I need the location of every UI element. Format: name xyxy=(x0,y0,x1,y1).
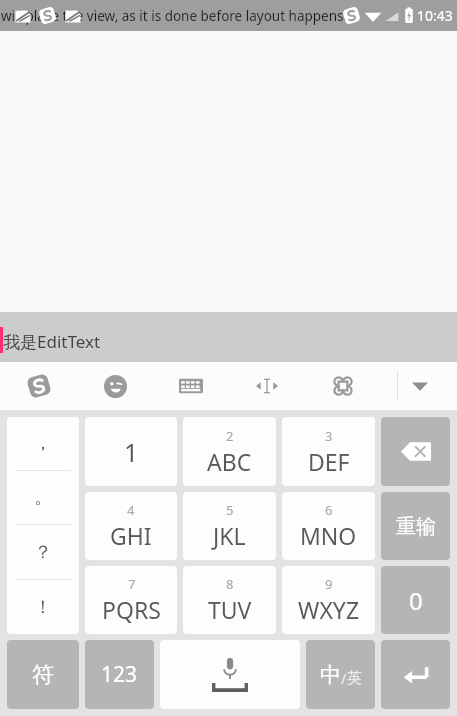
button[interactable]: 1 xyxy=(85,417,177,486)
staticText: WXYZ xyxy=(298,594,360,625)
staticText: 5 xyxy=(226,501,234,519)
staticText: 10:43 xyxy=(417,6,453,25)
button[interactable]: 重输 xyxy=(381,492,450,560)
button[interactable]: 8 xyxy=(183,566,276,634)
staticText: JKL xyxy=(213,520,246,551)
staticText: 0 xyxy=(409,584,423,617)
button[interactable]: 123 xyxy=(85,640,154,709)
staticText: 1 xyxy=(124,435,139,469)
button[interactable]: 中 xyxy=(306,640,375,709)
staticText: ？ xyxy=(34,541,52,564)
button[interactable]: 9 xyxy=(282,566,375,634)
button[interactable]: Hide keyboard xyxy=(398,362,442,410)
button[interactable]: 3 xyxy=(282,417,375,486)
staticText: GHI xyxy=(110,520,152,551)
staticText: 7 xyxy=(128,575,136,593)
staticText: ！ xyxy=(34,596,52,619)
staticText: 3 xyxy=(325,427,333,445)
staticText: 重输 xyxy=(396,514,436,539)
staticText: 英 xyxy=(347,669,362,688)
staticText: 中 xyxy=(320,662,341,688)
staticText: / xyxy=(341,669,347,688)
staticText: 4 xyxy=(127,501,135,519)
button[interactable]: 2 xyxy=(183,417,276,486)
staticText: 6 xyxy=(325,501,333,519)
button[interactable]: 5 xyxy=(183,492,276,560)
button[interactable]: 6 xyxy=(282,492,375,560)
staticText: 123 xyxy=(101,660,138,689)
staticText: 8 xyxy=(226,575,234,593)
staticText: 符 xyxy=(32,661,54,689)
staticText: will place the view, as it is done befor… xyxy=(1,7,352,25)
button[interactable]: More functions xyxy=(305,362,381,410)
staticText: 我是EditText xyxy=(3,330,101,353)
button[interactable]: Sogou input method xyxy=(0,362,77,410)
button[interactable]: ， xyxy=(7,417,79,634)
staticText: TUV xyxy=(208,594,252,625)
button[interactable]: Enter xyxy=(381,640,450,709)
staticText: ABC xyxy=(207,446,252,477)
button[interactable]: Emoji xyxy=(77,362,153,410)
button[interactable]: Space, voice input xyxy=(160,640,300,709)
button[interactable]: Backspace xyxy=(381,417,450,486)
staticText: MNO xyxy=(300,520,357,551)
staticText: PQRS xyxy=(102,594,161,625)
staticText: DEF xyxy=(308,446,350,477)
button[interactable]: Move cursor xyxy=(229,362,305,410)
staticText: 2 xyxy=(226,427,234,445)
button[interactable]: 符 xyxy=(7,640,79,709)
staticText: ， xyxy=(34,432,52,455)
button[interactable]: 4 xyxy=(85,492,177,560)
staticText: 。 xyxy=(34,486,52,509)
staticText: 9 xyxy=(325,575,333,593)
button[interactable]: 0 xyxy=(381,566,450,634)
button[interactable]: Keyboard layout xyxy=(153,362,229,410)
button[interactable]: 7 xyxy=(85,566,177,634)
